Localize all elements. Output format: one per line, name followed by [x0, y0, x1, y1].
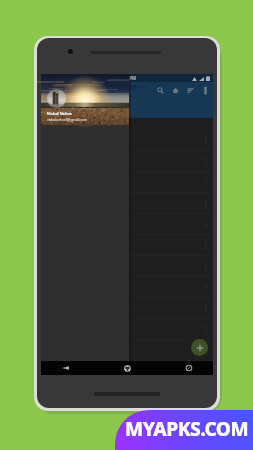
button[interactable]	[41, 319, 213, 339]
button[interactable]	[41, 151, 213, 171]
button[interactable]: Sort	[183, 82, 198, 98]
staticText: 11:42 PM	[117, 75, 137, 81]
button[interactable]	[41, 256, 213, 276]
button[interactable]	[41, 277, 213, 297]
button[interactable]	[41, 193, 213, 213]
staticText: Vishal Nehra	[47, 111, 72, 116]
button[interactable]	[41, 214, 213, 234]
button[interactable]	[41, 172, 213, 192]
button[interactable]	[41, 340, 213, 360]
button[interactable]: Search	[153, 82, 168, 98]
staticText: MYAPKS.COM	[125, 416, 249, 442]
button[interactable]: Home	[119, 361, 135, 375]
button[interactable]: Back	[57, 361, 73, 375]
button[interactable]: More options	[198, 82, 213, 98]
button[interactable]	[41, 130, 213, 150]
button[interactable]: Recents	[181, 361, 197, 375]
button[interactable]: Home	[168, 82, 183, 98]
staticText: vishalnehra9@gmail.com	[47, 117, 88, 122]
button[interactable]	[41, 235, 213, 255]
button[interactable]	[41, 298, 213, 318]
button[interactable]: Add	[191, 339, 208, 356]
